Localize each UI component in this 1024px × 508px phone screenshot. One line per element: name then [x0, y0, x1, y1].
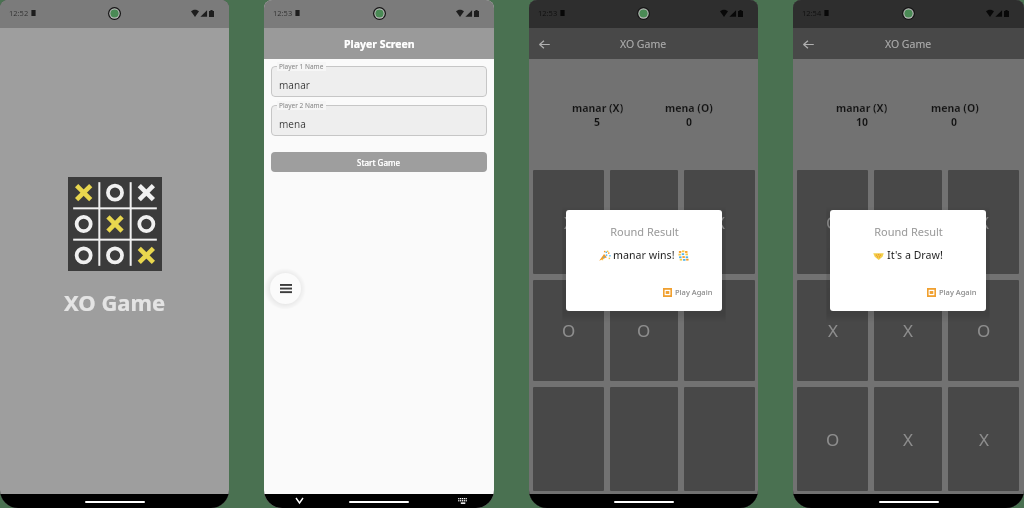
staticText: O	[826, 211, 840, 234]
staticText: O	[977, 319, 991, 342]
button[interactable]: X	[874, 280, 942, 381]
staticText: X	[903, 428, 913, 451]
staticText: Round Result	[610, 224, 679, 239]
staticText: O	[562, 319, 576, 342]
staticText: It's a Draw!	[887, 248, 943, 262]
button[interactable]	[271, 105, 487, 136]
button[interactable]	[684, 280, 755, 381]
staticText: mena	[279, 117, 306, 131]
staticText: manar wins!	[613, 248, 675, 262]
staticText: 12:54	[802, 8, 822, 18]
staticText: X	[828, 319, 838, 342]
button[interactable]: X	[874, 387, 942, 491]
staticText: O	[637, 319, 651, 342]
staticText: 0	[686, 115, 693, 129]
staticText: Player 2 Name	[279, 101, 324, 110]
staticText: 12:53	[273, 8, 293, 18]
button[interactable]	[874, 170, 942, 274]
staticText: X	[564, 211, 574, 234]
button[interactable]: X	[948, 170, 1019, 274]
staticText: X	[715, 211, 725, 234]
staticText: Play Again	[939, 287, 977, 297]
button[interactable]: O	[610, 280, 678, 381]
staticText: 5	[594, 115, 601, 129]
staticText: mena (O)	[665, 101, 713, 115]
staticText: Start Game	[357, 157, 401, 168]
button[interactable]: Start Game	[271, 152, 487, 172]
staticText: Play Again	[675, 287, 713, 297]
button[interactable]: Back	[534, 34, 554, 54]
staticText: manar (X)	[572, 101, 624, 115]
staticText: mena (O)	[931, 101, 979, 115]
staticText: Player Screen	[344, 37, 415, 51]
staticText: 0	[951, 115, 958, 129]
button[interactable]: O	[797, 387, 868, 491]
staticText: manar (X)	[836, 101, 888, 115]
staticText: 12:53	[538, 8, 558, 18]
staticText: 10	[856, 115, 869, 129]
staticText: X	[979, 211, 989, 234]
button[interactable]: X	[948, 387, 1019, 491]
staticText: XO Game	[620, 37, 667, 51]
staticText: manar	[279, 78, 310, 92]
button[interactable]: X	[533, 170, 604, 274]
button[interactable]	[271, 66, 487, 97]
button[interactable]: O	[533, 280, 604, 381]
staticText: X	[903, 319, 913, 342]
button[interactable]: O	[948, 280, 1019, 381]
staticText: Player 1 Name	[279, 62, 324, 71]
staticText: X	[979, 428, 989, 451]
staticText: XO Game	[885, 37, 932, 51]
button[interactable]: X	[797, 280, 868, 381]
button[interactable]: Play Again	[663, 287, 713, 297]
button[interactable]: X	[684, 170, 755, 274]
button[interactable]: O	[797, 170, 868, 274]
button[interactable]: Menu	[270, 273, 301, 304]
button[interactable]: Back	[798, 34, 818, 54]
button[interactable]: Play Again	[927, 287, 977, 297]
staticText: O	[826, 428, 840, 451]
staticText: Round Result	[874, 224, 943, 239]
staticText: XO Game	[64, 287, 166, 317]
staticText: 12:52	[9, 8, 29, 18]
button[interactable]	[610, 170, 678, 274]
